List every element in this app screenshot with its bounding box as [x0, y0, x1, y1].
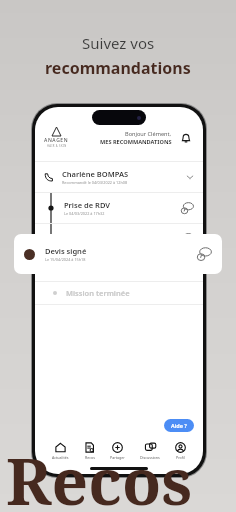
button[interactable]: Développer — [186, 173, 194, 181]
staticText: Partager — [110, 455, 125, 460]
button[interactable]: Profil — [173, 441, 188, 461]
button[interactable] — [14, 234, 222, 274]
staticText: Prise de RDV — [64, 200, 111, 210]
button[interactable]: Partager — [108, 441, 127, 461]
staticText: Bonjour Clément, — [125, 130, 172, 138]
staticText: Le 15/04/2024 à 15h18 — [45, 257, 86, 262]
button[interactable]: Mission terminée — [35, 282, 203, 304]
staticText: ANAGEN — [44, 137, 69, 144]
staticText: HAIR & SKIN — [47, 144, 67, 148]
button[interactable]: Discussion — [197, 247, 212, 262]
staticText: Le 04/03/2022 à 17h32 — [64, 211, 105, 216]
staticText: Devis signé — [45, 246, 87, 256]
staticText: Discussions — [140, 455, 160, 460]
button[interactable]: Charlène BOMPAS — [35, 162, 203, 192]
button[interactable]: Actualités — [50, 441, 71, 461]
button[interactable]: Discussion — [181, 233, 194, 246]
button[interactable]: Discussion — [181, 202, 194, 215]
staticText: Actualités — [52, 455, 69, 460]
button[interactable]: Aide ? — [164, 419, 194, 432]
staticText: Suivez vos — [82, 33, 155, 53]
staticText: recommandations — [45, 57, 191, 79]
staticText: Charlène BOMPAS — [62, 169, 129, 179]
staticText: Mission terminée — [66, 288, 130, 298]
button[interactable]: Prise de RDV — [35, 193, 203, 223]
staticText: Recos — [6, 437, 192, 512]
staticText: Recos — [85, 455, 95, 460]
button[interactable]: Discussions — [138, 441, 162, 461]
staticText: Aide ? — [171, 422, 187, 429]
button[interactable]: Proposition — [35, 224, 203, 254]
staticText: MES RECOMMANDATIONS — [100, 138, 172, 146]
staticText: Recommandé le 04/03/2022 à 12h08 — [62, 180, 128, 185]
button[interactable]: Notifications — [178, 130, 194, 146]
staticText: Profil — [176, 455, 185, 460]
button[interactable]: Recos — [82, 441, 97, 461]
